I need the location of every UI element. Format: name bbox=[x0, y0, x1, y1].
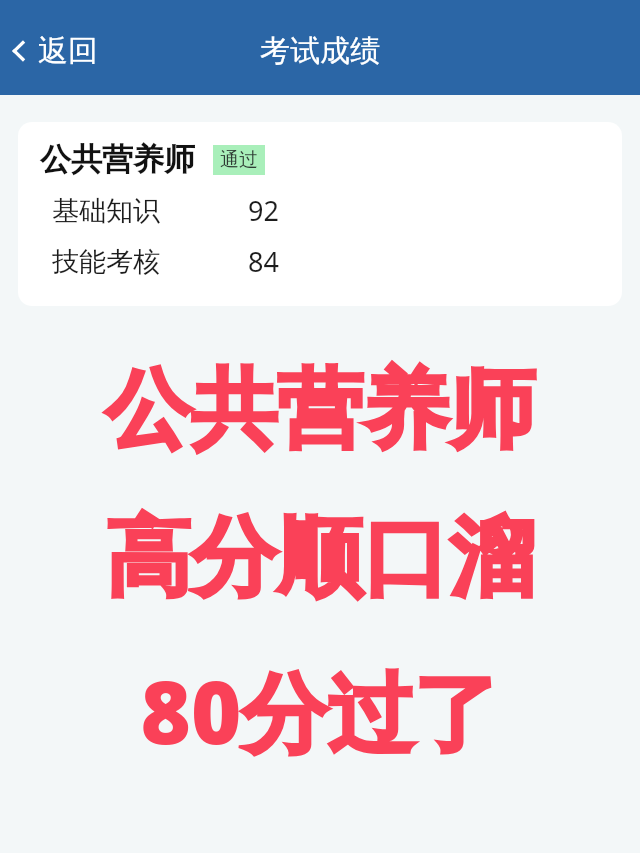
staticText: 高分顺口溜 bbox=[0, 504, 640, 612]
staticText: 84 bbox=[248, 243, 279, 280]
button[interactable]: 技能考核 bbox=[40, 243, 604, 280]
staticText: 返回 bbox=[38, 32, 98, 70]
button[interactable]: 基础知识 bbox=[40, 192, 604, 229]
button[interactable]: 公共营养师 bbox=[18, 122, 622, 306]
staticText: 基础知识 bbox=[52, 194, 160, 228]
staticText: 公共营养师 bbox=[40, 140, 195, 179]
staticText: 92 bbox=[248, 192, 279, 229]
other: Back bbox=[10, 37, 28, 65]
staticText: 技能考核 bbox=[52, 245, 160, 279]
staticText: 通过 bbox=[220, 148, 258, 172]
staticText: 公共营养师 bbox=[0, 356, 640, 464]
button[interactable]: Back bbox=[0, 26, 112, 76]
staticText: 考试成绩 bbox=[260, 32, 380, 70]
staticText: 80分过了 bbox=[0, 652, 640, 769]
